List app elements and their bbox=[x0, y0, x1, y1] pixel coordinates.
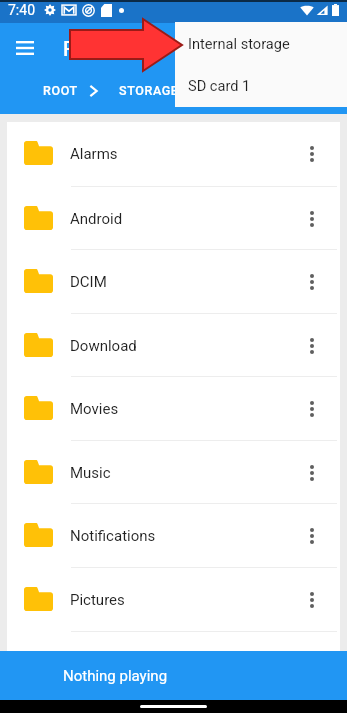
staticText: 7:40 bbox=[8, 2, 35, 18]
staticText: Movies bbox=[70, 400, 119, 418]
staticText: SD card 1 bbox=[188, 77, 251, 94]
button[interactable]: Download bbox=[7, 314, 340, 377]
button[interactable]: More options for Alarms bbox=[292, 134, 332, 174]
staticText: Files bbox=[63, 37, 106, 60]
button[interactable]: Notifications bbox=[7, 504, 340, 567]
staticText: Pictures bbox=[70, 591, 125, 609]
button[interactable]: DCIM bbox=[7, 250, 340, 313]
button[interactable]: STORAGE bbox=[119, 83, 179, 98]
button[interactable]: SD card 1 bbox=[175, 64, 347, 106]
staticText: Music bbox=[70, 464, 111, 482]
staticText: Download bbox=[70, 337, 137, 355]
button[interactable]: More options for Download bbox=[292, 326, 332, 366]
button[interactable]: More options for Pictures bbox=[292, 580, 332, 620]
button[interactable]: More options for Music bbox=[292, 453, 332, 493]
staticText: Notifications bbox=[70, 527, 156, 545]
staticText: Alarms bbox=[70, 145, 118, 163]
staticText: Android bbox=[70, 210, 123, 228]
button[interactable]: Open navigation drawer bbox=[8, 31, 42, 65]
button[interactable]: Alarms bbox=[7, 122, 340, 185]
button[interactable]: Pictures bbox=[7, 568, 340, 631]
button[interactable]: Movies bbox=[7, 377, 340, 440]
button[interactable]: Internal storage bbox=[175, 22, 347, 64]
staticText: DCIM bbox=[70, 273, 107, 291]
staticText: Nothing playing bbox=[63, 667, 168, 685]
button[interactable]: Android bbox=[7, 187, 340, 250]
button[interactable]: More options for DCIM bbox=[292, 262, 332, 302]
button[interactable]: More options for Android bbox=[292, 199, 332, 239]
button[interactable]: ROOT bbox=[43, 83, 78, 98]
button[interactable]: More options for Notifications bbox=[292, 516, 332, 556]
button[interactable]: More options for Movies bbox=[292, 389, 332, 429]
button[interactable]: Nothing playing bbox=[0, 651, 347, 700]
button[interactable]: Music bbox=[7, 441, 340, 504]
staticText: Internal storage bbox=[188, 35, 290, 52]
